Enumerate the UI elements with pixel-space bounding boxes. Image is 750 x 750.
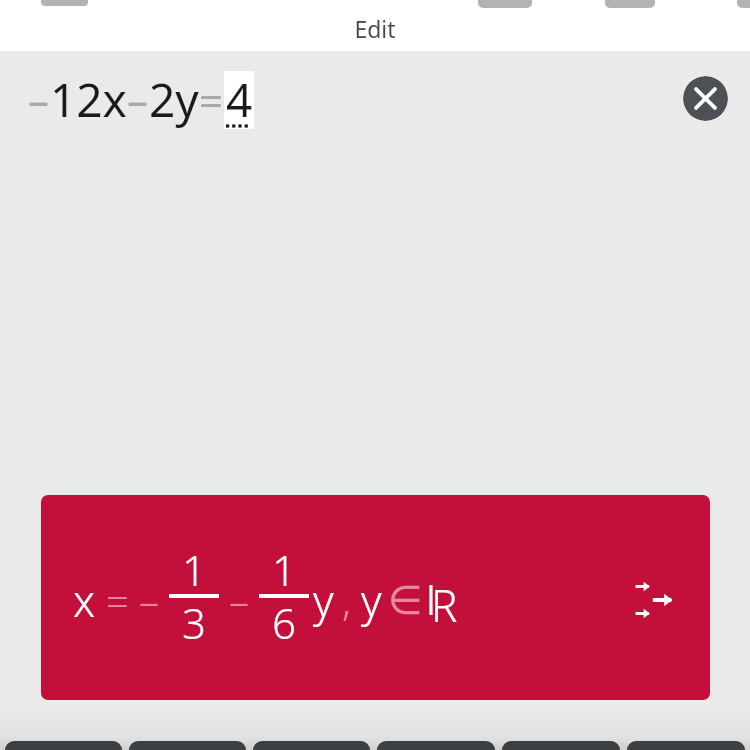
button[interactable]: x bbox=[41, 495, 710, 700]
staticText: R bbox=[431, 575, 458, 625]
staticText: 1 bbox=[182, 541, 206, 598]
button[interactable]: Keyboard key bbox=[253, 741, 370, 750]
staticText: 6 bbox=[272, 594, 296, 651]
button[interactable]: Show steps bbox=[630, 571, 688, 629]
button[interactable]: Keyboard key bbox=[377, 741, 495, 750]
staticText: , bbox=[342, 573, 351, 627]
button[interactable]: Clear equation bbox=[683, 76, 728, 121]
button[interactable]: Keyboard key bbox=[502, 741, 620, 750]
button[interactable]: – bbox=[28, 68, 254, 131]
staticText: = bbox=[106, 573, 129, 627]
staticText: = bbox=[199, 71, 224, 128]
staticText: 2y bbox=[149, 68, 199, 131]
staticText: – bbox=[229, 573, 249, 627]
staticText: 12x bbox=[50, 68, 127, 131]
button[interactable]: Keyboard key bbox=[5, 741, 122, 750]
staticText: Edit bbox=[354, 13, 396, 44]
button[interactable]: Keyboard key bbox=[627, 741, 745, 750]
staticText: y bbox=[361, 570, 382, 630]
staticText: 1 bbox=[272, 541, 296, 598]
staticText: – bbox=[28, 71, 50, 128]
staticText: x bbox=[73, 570, 96, 630]
staticText: 3 bbox=[182, 594, 206, 651]
button[interactable]: Keyboard key bbox=[129, 741, 246, 750]
staticText: y bbox=[313, 570, 334, 630]
staticText: – bbox=[139, 573, 159, 627]
staticText: ∈ bbox=[388, 577, 423, 624]
staticText: – bbox=[127, 71, 149, 128]
staticText: 4 bbox=[226, 68, 253, 131]
